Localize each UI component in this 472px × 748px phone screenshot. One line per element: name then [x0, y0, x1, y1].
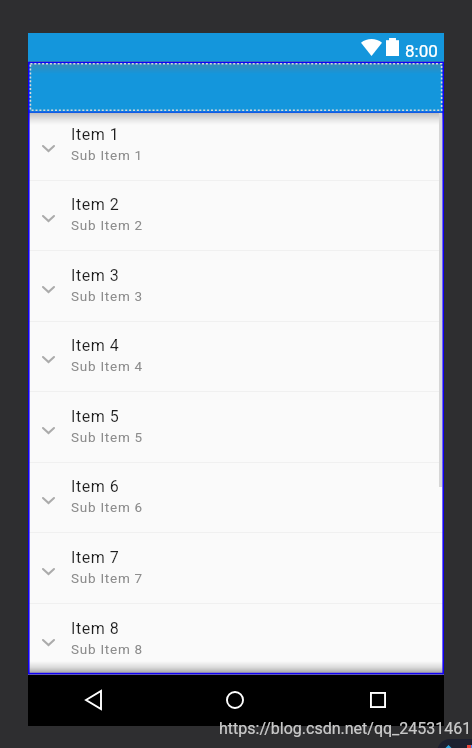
staticText: Item 3 — [71, 266, 120, 285]
staticText: Sub Item 1 — [71, 147, 143, 163]
button[interactable]: Recents — [353, 675, 403, 725]
staticText: Sub Item 7 — [71, 570, 143, 586]
button[interactable]: Item 8 — [28, 604, 444, 675]
button[interactable]: Item 7 — [28, 533, 444, 604]
staticText: Item 2 — [71, 195, 120, 214]
staticText: Sub Item 2 — [71, 217, 143, 233]
button[interactable]: Item 2 — [28, 180, 444, 251]
staticText: Sub Item 4 — [71, 358, 143, 374]
button[interactable]: Home — [210, 675, 260, 725]
staticText: https://blog.csdn.net/qq_24531461 — [219, 719, 472, 738]
button[interactable]: Back — [68, 675, 118, 725]
staticText: Item 4 — [71, 336, 120, 355]
staticText: Sub Item 5 — [71, 429, 143, 445]
button[interactable] — [28, 61, 444, 113]
staticText: Item 7 — [71, 548, 120, 567]
staticText: Item 1 — [71, 125, 120, 144]
button[interactable]: Item 5 — [28, 392, 444, 463]
staticText: Item 8 — [71, 619, 120, 638]
staticText: 8:00 — [405, 41, 438, 61]
staticText: Item 5 — [71, 407, 120, 426]
button[interactable]: Item 6 — [28, 462, 444, 533]
staticText: Sub Item 3 — [71, 288, 143, 304]
button[interactable]: Item 3 — [28, 251, 444, 322]
staticText: Item 6 — [71, 477, 120, 496]
staticText: Sub Item 6 — [71, 499, 143, 515]
button[interactable]: Item 1 — [28, 113, 444, 181]
staticText: Sub Item 8 — [71, 641, 143, 657]
button[interactable]: Item 4 — [28, 321, 444, 392]
